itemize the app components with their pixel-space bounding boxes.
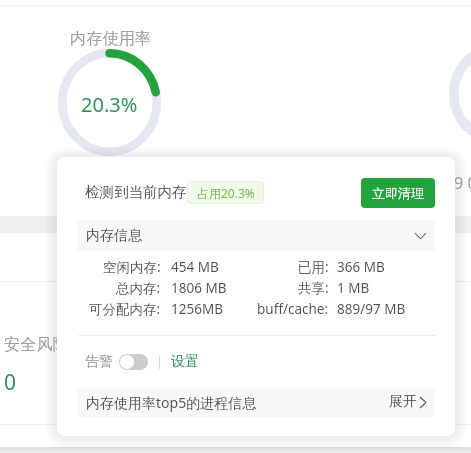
button[interactable]: 告警 toggle [119,354,148,370]
staticText: 366 MB [337,258,385,276]
staticText: 内存使用率top5的进程信息 [86,393,257,412]
staticText: 20.3% [81,91,138,115]
staticText: 内存信息 [86,227,142,245]
staticText: 展开 [389,393,417,411]
button[interactable]: 立即清理 [361,178,435,208]
staticText: 454 MB [171,258,219,276]
staticText: 空闲内存: [103,258,161,276]
staticText: 立即清理 [372,185,424,201]
staticText: 内存使用率 [70,28,151,48]
staticText: 0 [4,368,17,397]
staticText: 可分配内存: [89,300,161,318]
staticText: 1806 MB [171,279,227,297]
staticText: 告警 [85,353,113,371]
staticText: 共享: [298,279,329,297]
staticText: 总内存: [116,279,161,297]
staticText: buff/cache: [257,300,329,318]
staticText: 占用20.3% [197,185,255,201]
staticText: 1 MB [337,279,370,297]
button[interactable]: 内存使用率top5的进程信息 [77,387,435,417]
staticText: 9 0 [454,172,471,194]
staticText: 检测到当前内存 [85,183,187,201]
staticText: 设置 [171,353,199,371]
staticText: 889/97 MB [337,300,406,318]
staticText: 1256MB [171,300,223,318]
staticText: 已用: [298,258,329,276]
button[interactable]: 设置 [171,353,199,371]
staticText: 安全风险 [4,334,69,354]
button[interactable]: 内存信息 [77,220,435,251]
